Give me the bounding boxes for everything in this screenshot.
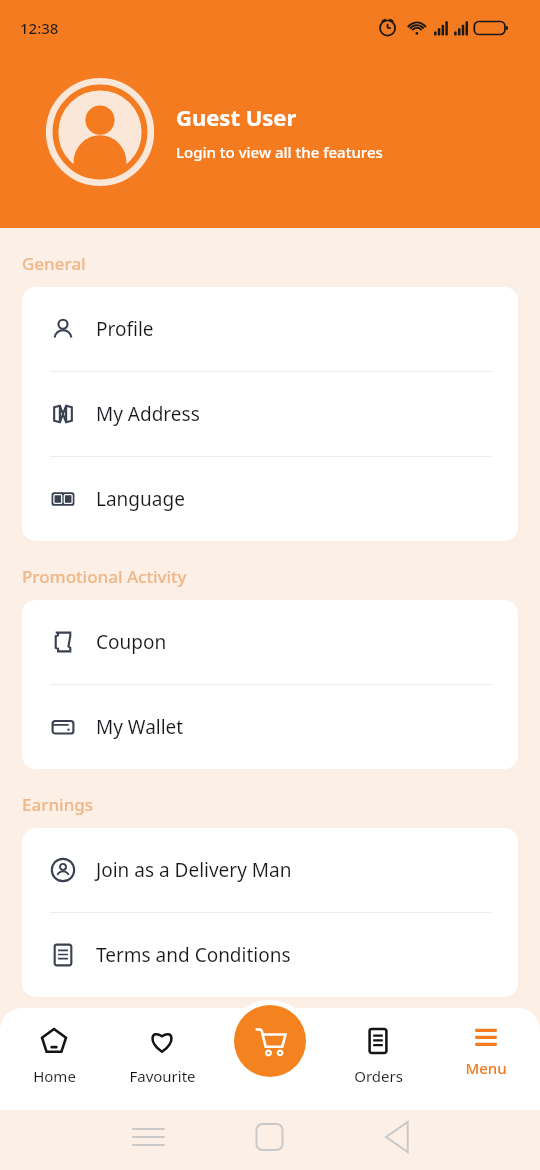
button[interactable]: Language (22, 457, 518, 541)
staticText: Earnings (22, 793, 94, 816)
staticText: Language (96, 486, 185, 512)
button[interactable]: Favourite (108, 1008, 216, 1110)
staticText: Coupon (96, 629, 167, 655)
staticText: Promotional Activity (22, 565, 187, 588)
staticText: General (22, 252, 86, 275)
staticText: My Address (96, 401, 200, 427)
button[interactable]: Terms and Conditions (22, 913, 518, 997)
button[interactable]: Join as a Delivery Man (22, 828, 518, 912)
staticText: Login to view all the features (176, 142, 383, 162)
staticText: Profile (96, 316, 154, 342)
staticText: My Wallet (96, 714, 184, 740)
staticText: Orders (354, 1066, 403, 1086)
button[interactable]: My Wallet (22, 685, 518, 769)
button[interactable]: My Address (22, 372, 518, 456)
staticText: Home (33, 1066, 76, 1086)
staticText: Menu (465, 1058, 507, 1078)
button[interactable]: Home (0, 1008, 108, 1110)
button[interactable]: Coupon (22, 600, 518, 684)
button[interactable]: Menu (432, 1008, 540, 1110)
staticText: Guest User (176, 102, 297, 132)
button[interactable]: Profile (22, 287, 518, 371)
staticText: Favourite (129, 1066, 196, 1086)
staticText: 12:38 (20, 18, 59, 38)
staticText: Join as a Delivery Man (96, 857, 292, 883)
staticText: Terms and Conditions (96, 942, 291, 968)
button[interactable]: Orders (324, 1008, 432, 1110)
button[interactable]: Cart (229, 1000, 311, 1082)
